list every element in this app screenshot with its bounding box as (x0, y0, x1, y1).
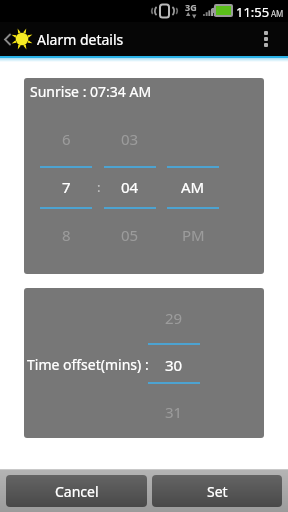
button[interactable]: AM (167, 163, 219, 211)
staticText: Cancel (55, 482, 99, 501)
button[interactable]: 6 (40, 115, 92, 163)
staticText: 05 (121, 225, 139, 245)
button[interactable]: PM (167, 211, 219, 259)
staticText: PM (182, 225, 205, 245)
staticText: 29 (165, 308, 183, 328)
staticText: 3G (185, 1, 197, 13)
staticText: AM (181, 177, 205, 197)
staticText: Set (207, 482, 228, 501)
button[interactable]: 29 (148, 294, 200, 341)
staticText: 03 (121, 129, 139, 149)
staticText: : (97, 178, 101, 196)
staticText: 8 (62, 225, 71, 245)
staticText: 7 (62, 177, 71, 197)
button[interactable]: 31 (148, 388, 200, 435)
button[interactable]: 03 (104, 115, 156, 163)
staticText: Alarm details (37, 30, 124, 49)
button[interactable]: 04 (104, 163, 156, 211)
staticText: AM (271, 8, 284, 19)
button[interactable]: 30 (148, 341, 200, 388)
button[interactable]: 05 (104, 211, 156, 259)
staticText: 31 (165, 402, 183, 422)
button[interactable] (264, 30, 268, 48)
button[interactable] (11, 28, 33, 50)
staticText: Time offset(mins) : (27, 355, 149, 374)
button[interactable]: Cancel (6, 475, 147, 507)
button[interactable]: 8 (40, 211, 92, 259)
staticText: 04 (121, 177, 139, 197)
staticText: 11:55 (236, 3, 270, 21)
staticText: 30 (165, 355, 183, 375)
button[interactable]: Set (152, 475, 282, 507)
staticText: 6 (62, 129, 71, 149)
staticText: Sunrise : 07:34 AM (30, 82, 152, 101)
button[interactable]: 7 (40, 163, 92, 211)
